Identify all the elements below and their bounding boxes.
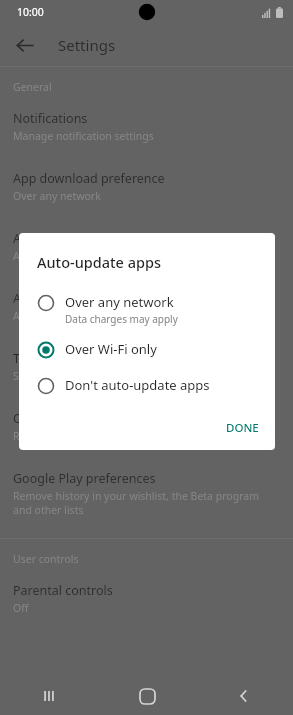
staticText: Theme [13, 350, 54, 367]
staticText: App download preference [13, 170, 165, 187]
staticText: Any network [13, 249, 76, 263]
staticText: Auto-play videos [13, 290, 111, 307]
staticText: Auto-update apps [13, 230, 119, 247]
staticText: Google Play preferences [13, 470, 156, 487]
button[interactable]: Recents [29, 677, 69, 715]
staticText: Over any network [65, 293, 174, 311]
staticText: System default [13, 369, 87, 383]
button[interactable]: Notifications [0, 100, 293, 154]
button[interactable]: Over Wi-Fi only [19, 333, 275, 366]
button[interactable]: Theme [0, 340, 293, 394]
button[interactable]: Over any network [19, 286, 275, 333]
staticText: User controls [13, 552, 79, 566]
button[interactable]: Home [127, 677, 167, 715]
staticText: Don't auto-update apps [65, 376, 210, 394]
staticText: Clear local search history [13, 410, 160, 427]
staticText: 10:00 [17, 5, 44, 19]
button[interactable]: DONE [210, 412, 275, 444]
button[interactable]: Back [224, 677, 264, 715]
button[interactable]: App download preference [0, 160, 293, 214]
staticText: Settings [58, 35, 116, 55]
staticText: Parental controls [13, 582, 113, 599]
button[interactable]: Google Play preferences [0, 460, 293, 528]
staticText: Manage notification settings [13, 129, 154, 143]
staticText: At any time [13, 309, 69, 323]
staticText: General [13, 80, 52, 94]
staticText: Off [13, 601, 29, 615]
button[interactable]: Parental controls [0, 572, 293, 626]
button[interactable]: Auto-play videos [0, 280, 293, 334]
button[interactable]: Auto-update apps [0, 220, 293, 274]
staticText: Remove searches you've done on this devi… [13, 429, 232, 443]
staticText: DONE [226, 420, 259, 436]
staticText: Over Wi-Fi only [65, 340, 157, 358]
staticText: and other lists [13, 503, 84, 517]
staticText: Auto-update apps [37, 252, 161, 272]
button[interactable]: Back [8, 29, 40, 61]
staticText: Data charges may apply [65, 312, 178, 326]
button[interactable]: Clear local search history [0, 400, 293, 454]
button[interactable]: Don't auto-update apps [19, 369, 275, 402]
staticText: Over any network [13, 189, 101, 203]
staticText: Remove history in your wishlist, the Bet… [13, 489, 259, 503]
staticText: Notifications [13, 110, 88, 127]
